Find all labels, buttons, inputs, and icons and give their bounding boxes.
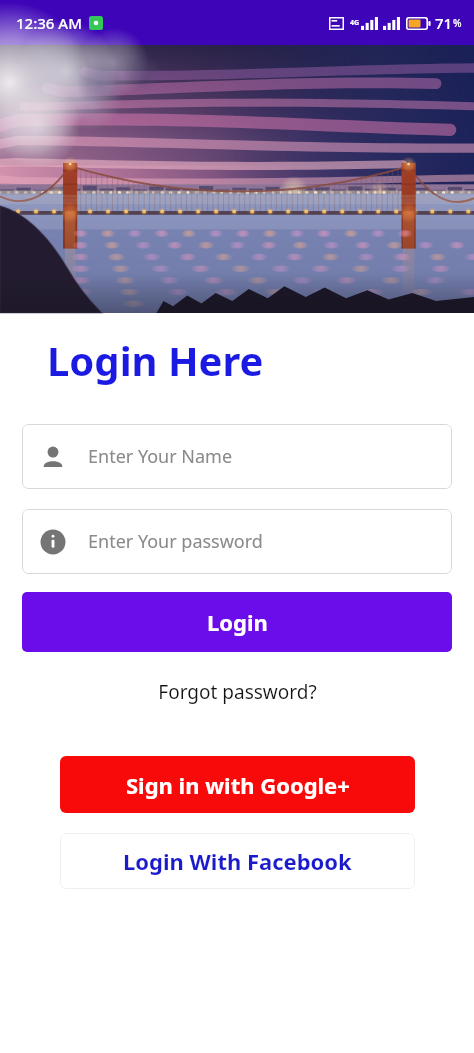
button[interactable]: Enter Your password [22, 509, 452, 574]
button[interactable]: Login With Facebook [60, 833, 415, 889]
staticText: 71 [435, 13, 453, 33]
staticText: Login With Facebook [123, 846, 352, 876]
button[interactable]: Enter Your Name [22, 424, 452, 489]
staticText: 12:36 AM [16, 13, 82, 33]
staticText: 4G [350, 18, 360, 28]
button[interactable]: Sign in with Google+ [60, 756, 415, 813]
staticText: Forgot password? [158, 679, 317, 705]
staticText: % [453, 16, 462, 30]
staticText: Enter Your password [88, 529, 263, 554]
button[interactable]: Login [22, 592, 452, 652]
button[interactable]: Forgot password? [150, 675, 325, 709]
staticText: Enter Your Name [88, 444, 233, 469]
staticText: Login [207, 607, 268, 637]
staticText: Sign in with Google+ [126, 770, 350, 800]
staticText: Login Here [47, 333, 264, 387]
